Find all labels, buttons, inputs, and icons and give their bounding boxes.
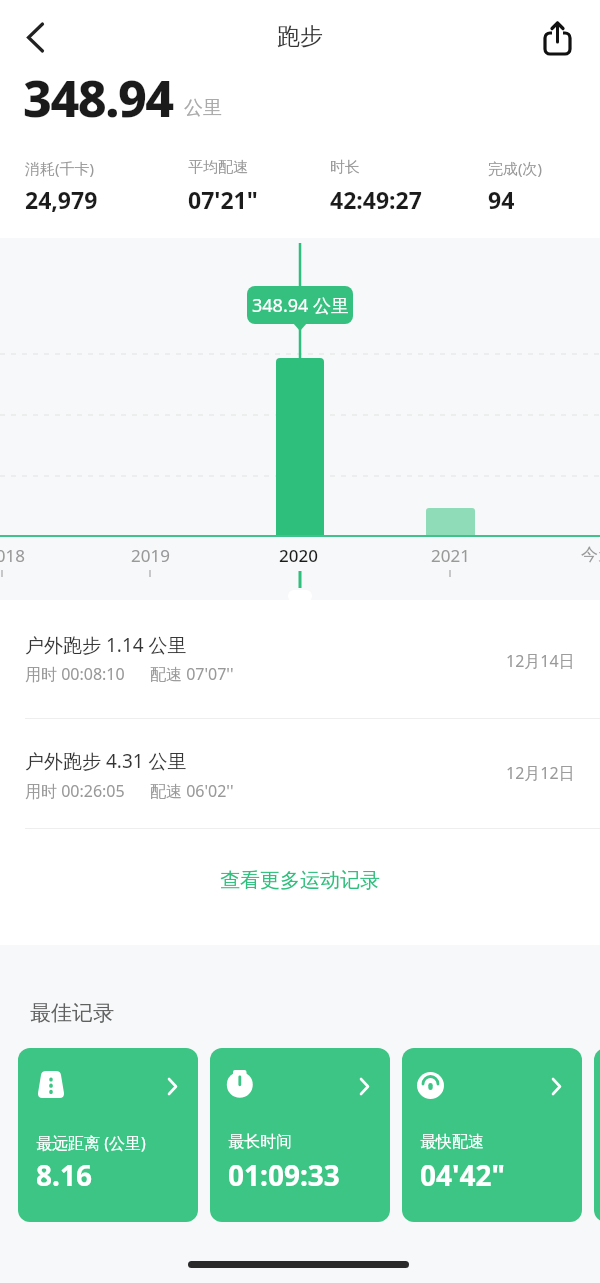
staticText: 348.94 公里 [252,293,349,318]
staticText: 01:09:33 [228,1156,340,1194]
staticText: 消耗(千卡) [25,158,95,178]
staticText: 24,979 [25,184,98,215]
staticText: 时长 [330,158,360,177]
staticText: 2021 [431,544,470,567]
staticText: 最快配速 [420,1132,484,1152]
staticText: 2020 [279,544,318,567]
button[interactable]: 最快配速 [402,1048,582,1222]
staticText: 跑步 [277,22,323,51]
staticText: 用时 00:08:10 [25,663,125,685]
staticText: 2019 [131,544,170,567]
staticText: 用时 00:26:05 [25,780,125,802]
staticText: 户外跑步 4.31 公里 [25,748,187,774]
staticText: 完成(次) [488,158,543,178]
staticText: 公里 [184,96,222,120]
button[interactable]: 最远距离 (公里) [18,1048,198,1222]
staticText: 04'42" [420,1156,505,1194]
staticText: 最远距离 (公里) [36,1132,146,1154]
staticText: 查看更多运动记录 [220,868,380,893]
staticText: 户外跑步 1.14 公里 [25,632,187,658]
staticText: 今天 [581,544,600,565]
staticText: 最长时间 [228,1132,292,1152]
staticText: 12月12日 [506,762,575,784]
staticText: 配速 07'07'' [150,663,234,685]
button[interactable] [534,12,582,60]
staticText: 12月14日 [506,650,575,672]
staticText: 348.94 [23,64,173,132]
button[interactable]: 户外跑步 4.31 公里 [0,718,600,828]
staticText: 94 [488,184,515,215]
staticText: 07'21" [188,184,258,215]
button[interactable] [14,12,58,56]
staticText: 配速 06'02'' [150,780,234,802]
button[interactable]: 最长距离 [594,1048,600,1222]
button[interactable]: 户外跑步 1.14 公里 [0,603,600,718]
staticText: 8.16 [36,1156,92,1194]
button[interactable]: 查看更多运动记录 [0,855,600,905]
staticText: 平均配速 [188,158,248,177]
staticText: 最佳记录 [30,1000,114,1026]
staticText: 42:49:27 [330,184,422,215]
button[interactable]: 最长时间 [210,1048,390,1222]
staticText: 2018 [0,544,25,567]
